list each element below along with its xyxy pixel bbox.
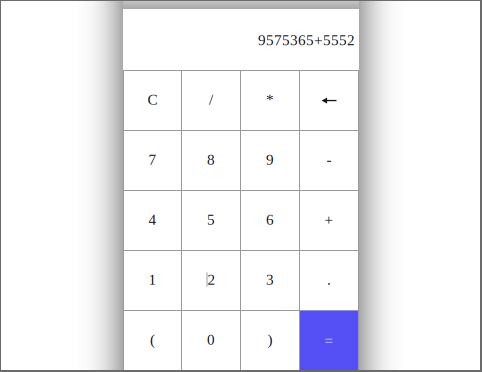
button[interactable]: 8 bbox=[182, 131, 240, 190]
staticText: 3 bbox=[266, 271, 274, 288]
staticText: C bbox=[147, 91, 157, 108]
staticText: 8 bbox=[207, 151, 215, 168]
staticText: 1 bbox=[148, 271, 156, 288]
button[interactable]: 7 bbox=[124, 131, 181, 190]
staticText: 7 bbox=[148, 151, 156, 168]
button[interactable]: 2 bbox=[182, 251, 240, 310]
staticText: * bbox=[266, 91, 274, 108]
button[interactable]: Clear bbox=[124, 71, 181, 130]
button[interactable]: 5 bbox=[182, 191, 240, 250]
staticText: 2 bbox=[207, 271, 215, 288]
button[interactable]: 1 bbox=[124, 251, 181, 310]
button[interactable]: 4 bbox=[124, 191, 181, 250]
staticText: 9 bbox=[266, 151, 274, 168]
button[interactable]: Backspace bbox=[300, 71, 358, 130]
button[interactable]: Open parenthesis bbox=[124, 311, 181, 370]
staticText: - bbox=[326, 151, 331, 168]
staticText: 0 bbox=[207, 331, 215, 348]
staticText: + bbox=[324, 211, 333, 228]
button[interactable]: Plus bbox=[300, 191, 358, 250]
staticText: 6 bbox=[266, 211, 274, 228]
staticText: 9575365+5552 bbox=[258, 32, 355, 48]
button[interactable]: 0 bbox=[182, 311, 240, 370]
button[interactable]: Multiply bbox=[241, 71, 299, 130]
staticText: / bbox=[209, 91, 213, 108]
button[interactable]: 9 bbox=[241, 131, 299, 190]
staticText: = bbox=[324, 332, 333, 349]
button[interactable]: Divide bbox=[182, 71, 240, 130]
staticText: . bbox=[327, 271, 331, 288]
button[interactable]: 3 bbox=[241, 251, 299, 310]
staticText: 5 bbox=[207, 211, 215, 228]
staticText: ) bbox=[267, 331, 272, 348]
button[interactable]: Close parenthesis bbox=[241, 311, 299, 370]
button[interactable]: Decimal point bbox=[300, 251, 358, 310]
button[interactable]: 6 bbox=[241, 191, 299, 250]
staticText: ( bbox=[150, 331, 155, 348]
button[interactable]: Minus bbox=[300, 131, 358, 190]
button[interactable]: Equals bbox=[300, 311, 358, 370]
staticText: 4 bbox=[148, 211, 156, 228]
